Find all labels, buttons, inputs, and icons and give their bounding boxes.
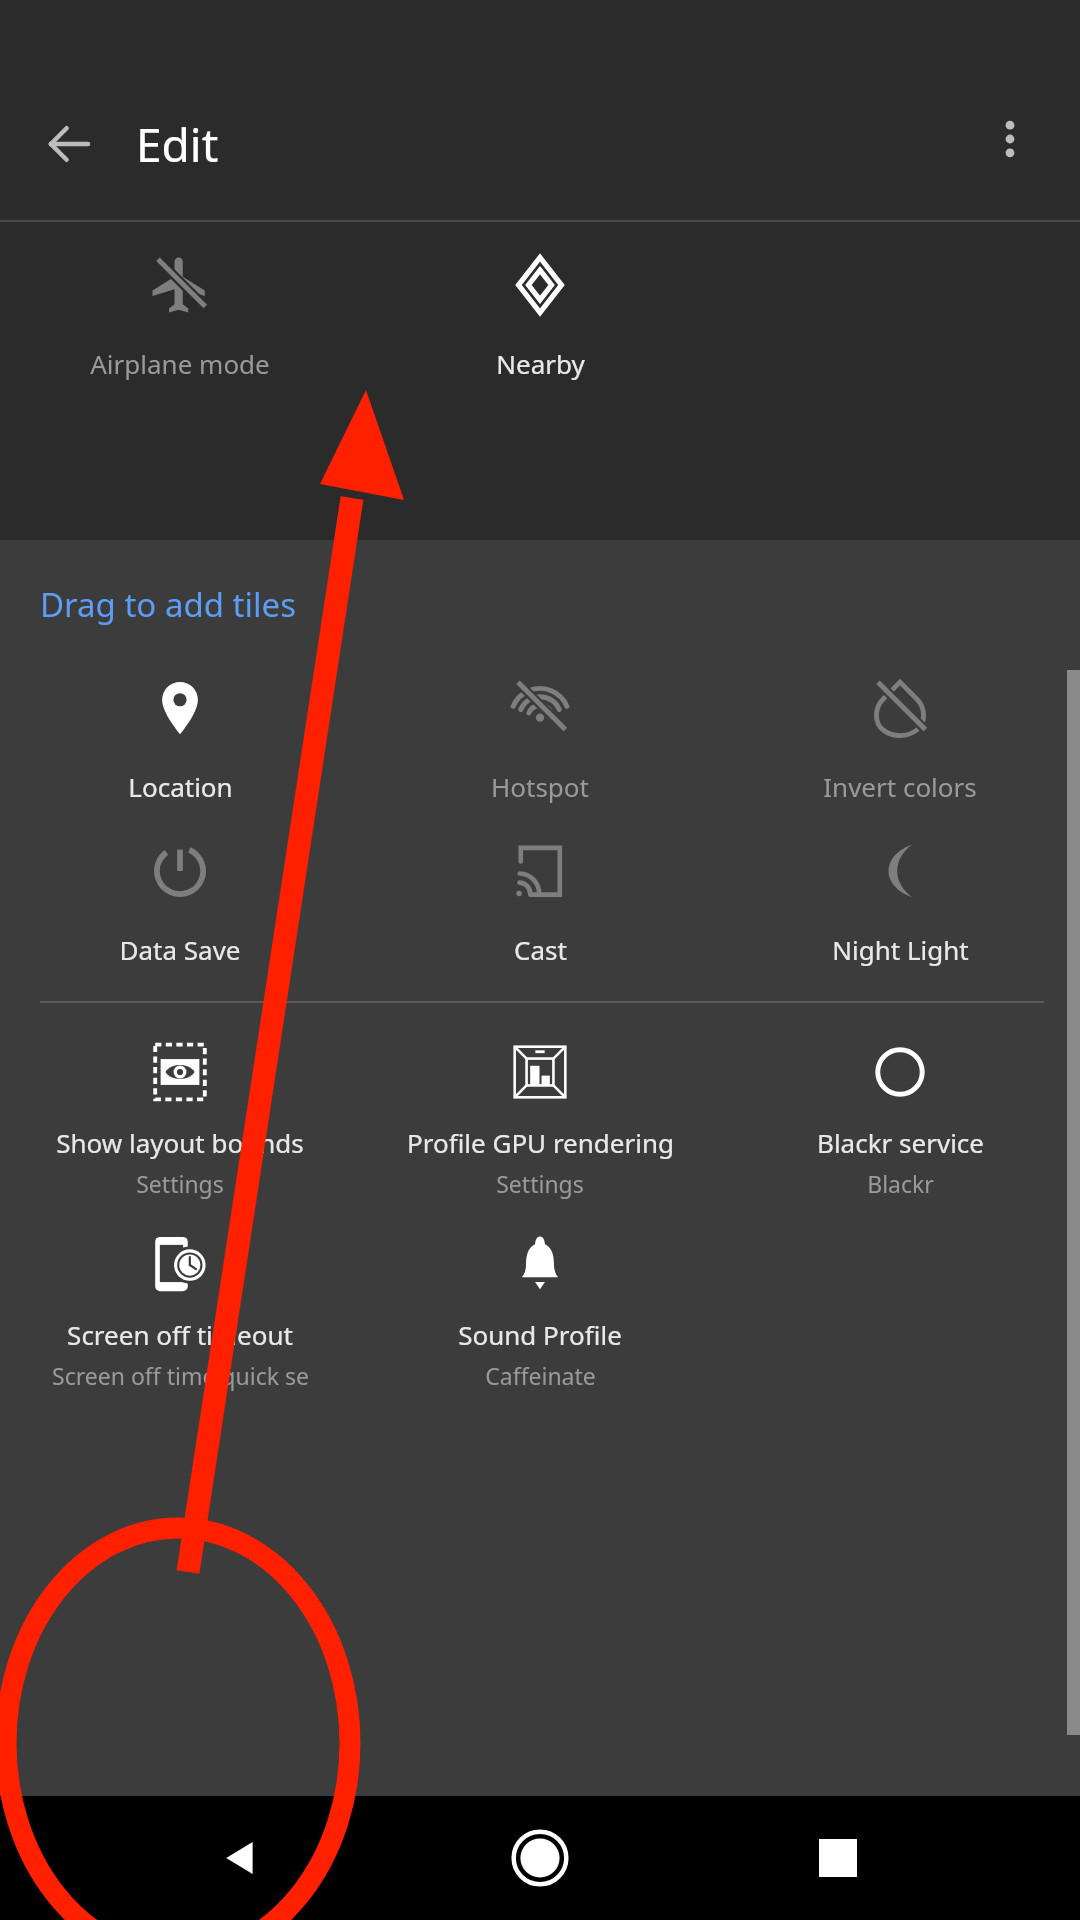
button[interactable]: Back: [188, 1803, 298, 1913]
staticText: Night Light: [832, 932, 969, 967]
staticText: Settings: [136, 1168, 224, 1199]
staticText: Cast: [514, 932, 567, 967]
staticText: Drag to add tiles: [40, 582, 296, 627]
staticText: Blackr service: [817, 1125, 984, 1160]
staticText: Location: [128, 769, 233, 804]
button[interactable]: Blackr service: [720, 1003, 1080, 1199]
staticText: Screen off time quick se: [52, 1360, 309, 1391]
staticText: Edit: [136, 113, 219, 176]
button[interactable]: Profile GPU rendering: [360, 1003, 720, 1199]
button[interactable]: Sound Profile: [360, 1199, 720, 1391]
button[interactable]: Airplane mode: [0, 222, 360, 381]
staticText: Screen off timeout: [67, 1317, 293, 1352]
staticText: Show layout bounds: [56, 1125, 304, 1160]
staticText: Blackr: [867, 1168, 934, 1199]
button[interactable]: Screen off timeout: [0, 1199, 360, 1391]
button[interactable]: Cast: [360, 804, 720, 967]
button[interactable]: Data Save: [0, 804, 360, 967]
staticText: Settings: [496, 1168, 584, 1199]
button[interactable]: Back: [30, 104, 110, 184]
button[interactable]: Nearby: [360, 222, 720, 381]
button[interactable]: Night Light: [720, 804, 1080, 967]
button[interactable]: Recent apps: [783, 1803, 893, 1913]
button[interactable]: Hotspot: [360, 645, 720, 804]
staticText: Caffeinate: [485, 1360, 596, 1391]
staticText: Profile GPU rendering: [407, 1125, 674, 1160]
staticText: Nearby: [496, 346, 585, 381]
button[interactable]: Home: [485, 1803, 595, 1913]
button[interactable]: Location: [0, 645, 360, 804]
staticText: Invert colors: [823, 769, 977, 804]
button[interactable]: Invert colors: [720, 645, 1080, 804]
staticText: Airplane mode: [90, 346, 270, 381]
staticText: Sound Profile: [458, 1317, 622, 1352]
button[interactable]: More options: [968, 97, 1052, 181]
staticText: Data Save: [119, 932, 241, 967]
button[interactable]: Show layout bounds: [0, 1003, 360, 1199]
staticText: Hotspot: [491, 769, 589, 804]
